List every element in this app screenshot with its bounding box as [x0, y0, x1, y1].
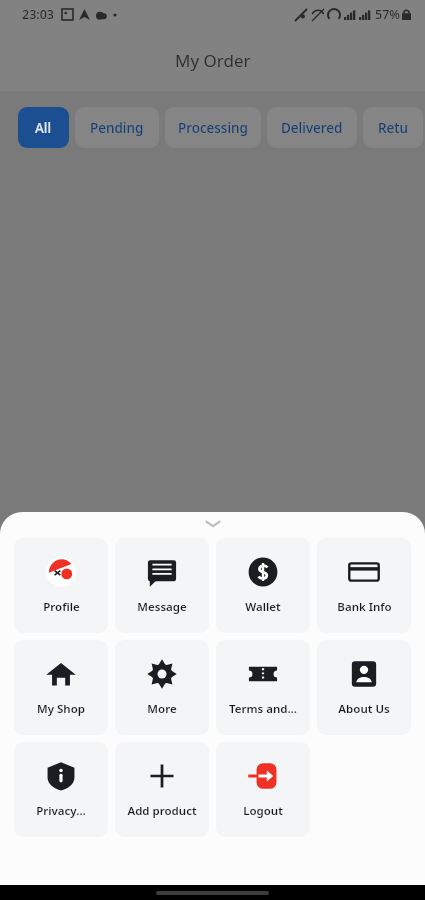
- staticText: My Shop: [37, 701, 85, 717]
- button[interactable]: Profile: [14, 538, 108, 633]
- staticText: Logout: [243, 803, 283, 819]
- staticText: Message: [137, 599, 187, 615]
- staticText: Delivered: [281, 119, 343, 137]
- button[interactable]: Logout: [216, 742, 310, 837]
- button[interactable]: All: [18, 107, 69, 148]
- button[interactable]: Message: [115, 538, 209, 633]
- other: Profile: [45, 556, 77, 588]
- staticText: 23:03: [22, 6, 55, 23]
- staticText: Terms and...: [229, 701, 297, 717]
- staticText: Profile: [43, 599, 80, 615]
- button[interactable]: Bank Info: [317, 538, 411, 633]
- button[interactable]: Retu: [363, 107, 423, 148]
- staticText: Add product: [127, 803, 197, 819]
- button[interactable]: Processing: [165, 107, 261, 148]
- other: Logout: [247, 760, 279, 792]
- other: Terms and conditions: [247, 658, 279, 690]
- other: Bank Info: [348, 556, 380, 588]
- other: My Shop: [45, 658, 77, 690]
- staticText: About Us: [338, 701, 390, 717]
- other: About Us: [348, 658, 380, 690]
- other: Privacy policy: [45, 760, 77, 792]
- other: More: [146, 658, 178, 690]
- staticText: All: [35, 119, 52, 137]
- staticText: My Order: [175, 49, 251, 72]
- staticText: Wallet: [245, 599, 281, 615]
- staticText: Processing: [178, 119, 248, 137]
- other: Message: [146, 556, 178, 588]
- button[interactable]: Delivered: [267, 107, 357, 148]
- button[interactable]: Wallet: [216, 538, 310, 633]
- button[interactable]: More: [115, 640, 209, 735]
- staticText: Privacy...: [36, 803, 86, 819]
- staticText: Pending: [90, 119, 144, 137]
- button[interactable]: Privacy policy: [14, 742, 108, 837]
- button[interactable]: Add product: [115, 742, 209, 837]
- button[interactable]: My Shop: [14, 640, 108, 735]
- button[interactable]: About Us: [317, 640, 411, 735]
- staticText: Bank Info: [337, 599, 392, 615]
- staticText: 57%: [375, 6, 400, 23]
- button[interactable]: Terms and conditions: [216, 640, 310, 735]
- staticText: More: [147, 701, 177, 717]
- staticText: Retu: [378, 119, 408, 137]
- other: Wallet: [247, 556, 279, 588]
- other: Add product: [146, 760, 178, 792]
- button[interactable]: Pending: [75, 107, 159, 148]
